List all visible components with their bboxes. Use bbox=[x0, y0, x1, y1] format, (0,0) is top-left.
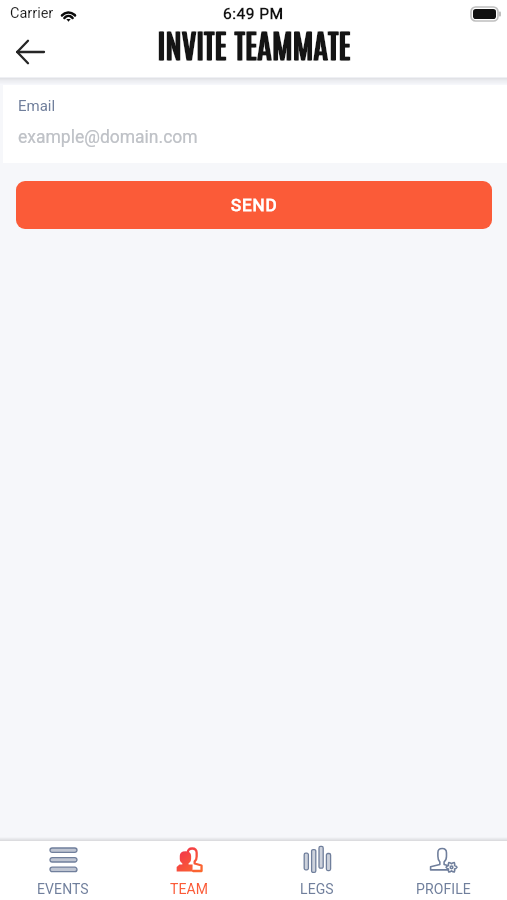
staticText: INVITE TEAMMATE bbox=[158, 22, 352, 64]
staticText: EVENTS bbox=[37, 881, 89, 897]
staticText: 6:49 PM bbox=[223, 5, 284, 23]
button[interactable]: LEGS bbox=[253, 841, 380, 900]
button[interactable]: EVENTS bbox=[0, 841, 126, 900]
staticText: Email bbox=[18, 97, 56, 115]
staticText: Carrier bbox=[10, 5, 54, 22]
staticText: TEAM bbox=[170, 881, 209, 897]
staticText: PROFILE bbox=[416, 881, 471, 897]
staticText: INVITE TEAMMATE bbox=[157, 22, 351, 64]
button[interactable]: PROFILE bbox=[380, 841, 507, 900]
button[interactable]: Back bbox=[7, 29, 53, 75]
staticText: LEGS bbox=[300, 881, 334, 897]
button[interactable]: SEND bbox=[16, 181, 492, 229]
staticText: SEND bbox=[231, 195, 278, 215]
staticText: example@domain.com bbox=[18, 127, 198, 148]
button[interactable]: TEAM bbox=[126, 841, 253, 900]
